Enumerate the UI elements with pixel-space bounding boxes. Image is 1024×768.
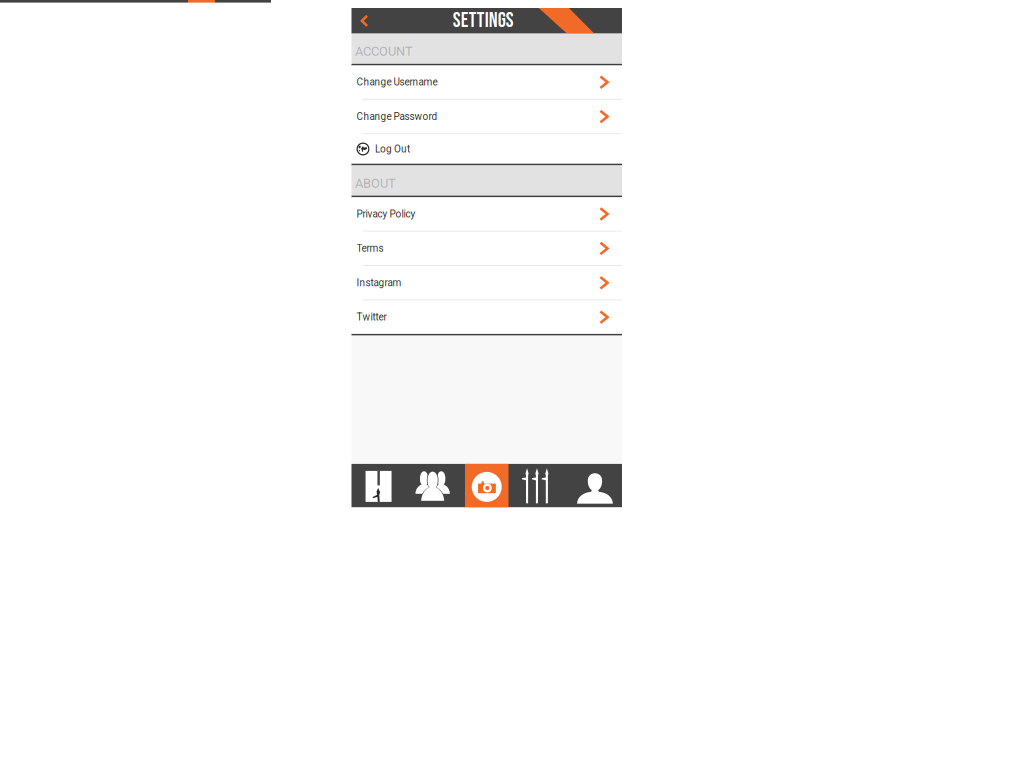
staticText: Twitter [356, 311, 386, 323]
button[interactable]: Change Username [351, 65, 622, 99]
staticText: Instagram [356, 277, 401, 289]
staticText: Change Password [356, 111, 437, 122]
staticText: SETTINGS [453, 8, 514, 33]
staticText: ACCOUNT [355, 44, 413, 59]
button[interactable]: Back [351, 8, 377, 34]
staticText: ABOUT [355, 176, 396, 191]
button[interactable]: Camera [460, 464, 514, 507]
staticText: Log Out [375, 143, 410, 155]
staticText: Change Username [356, 76, 437, 88]
button[interactable]: Privacy Policy [351, 197, 622, 231]
button[interactable]: Home [351, 464, 406, 507]
button[interactable]: Instagram [351, 266, 622, 299]
button[interactable]: Log Out [351, 134, 622, 164]
button[interactable]: Change Password [351, 100, 622, 133]
button[interactable]: Profile [568, 464, 622, 507]
button[interactable]: Twitter [351, 300, 622, 334]
button[interactable]: Routes [514, 464, 568, 507]
staticText: Privacy Policy [356, 208, 415, 220]
staticText: Terms [356, 242, 383, 254]
button[interactable]: Terms [351, 232, 622, 265]
button[interactable]: Friends [406, 464, 460, 507]
